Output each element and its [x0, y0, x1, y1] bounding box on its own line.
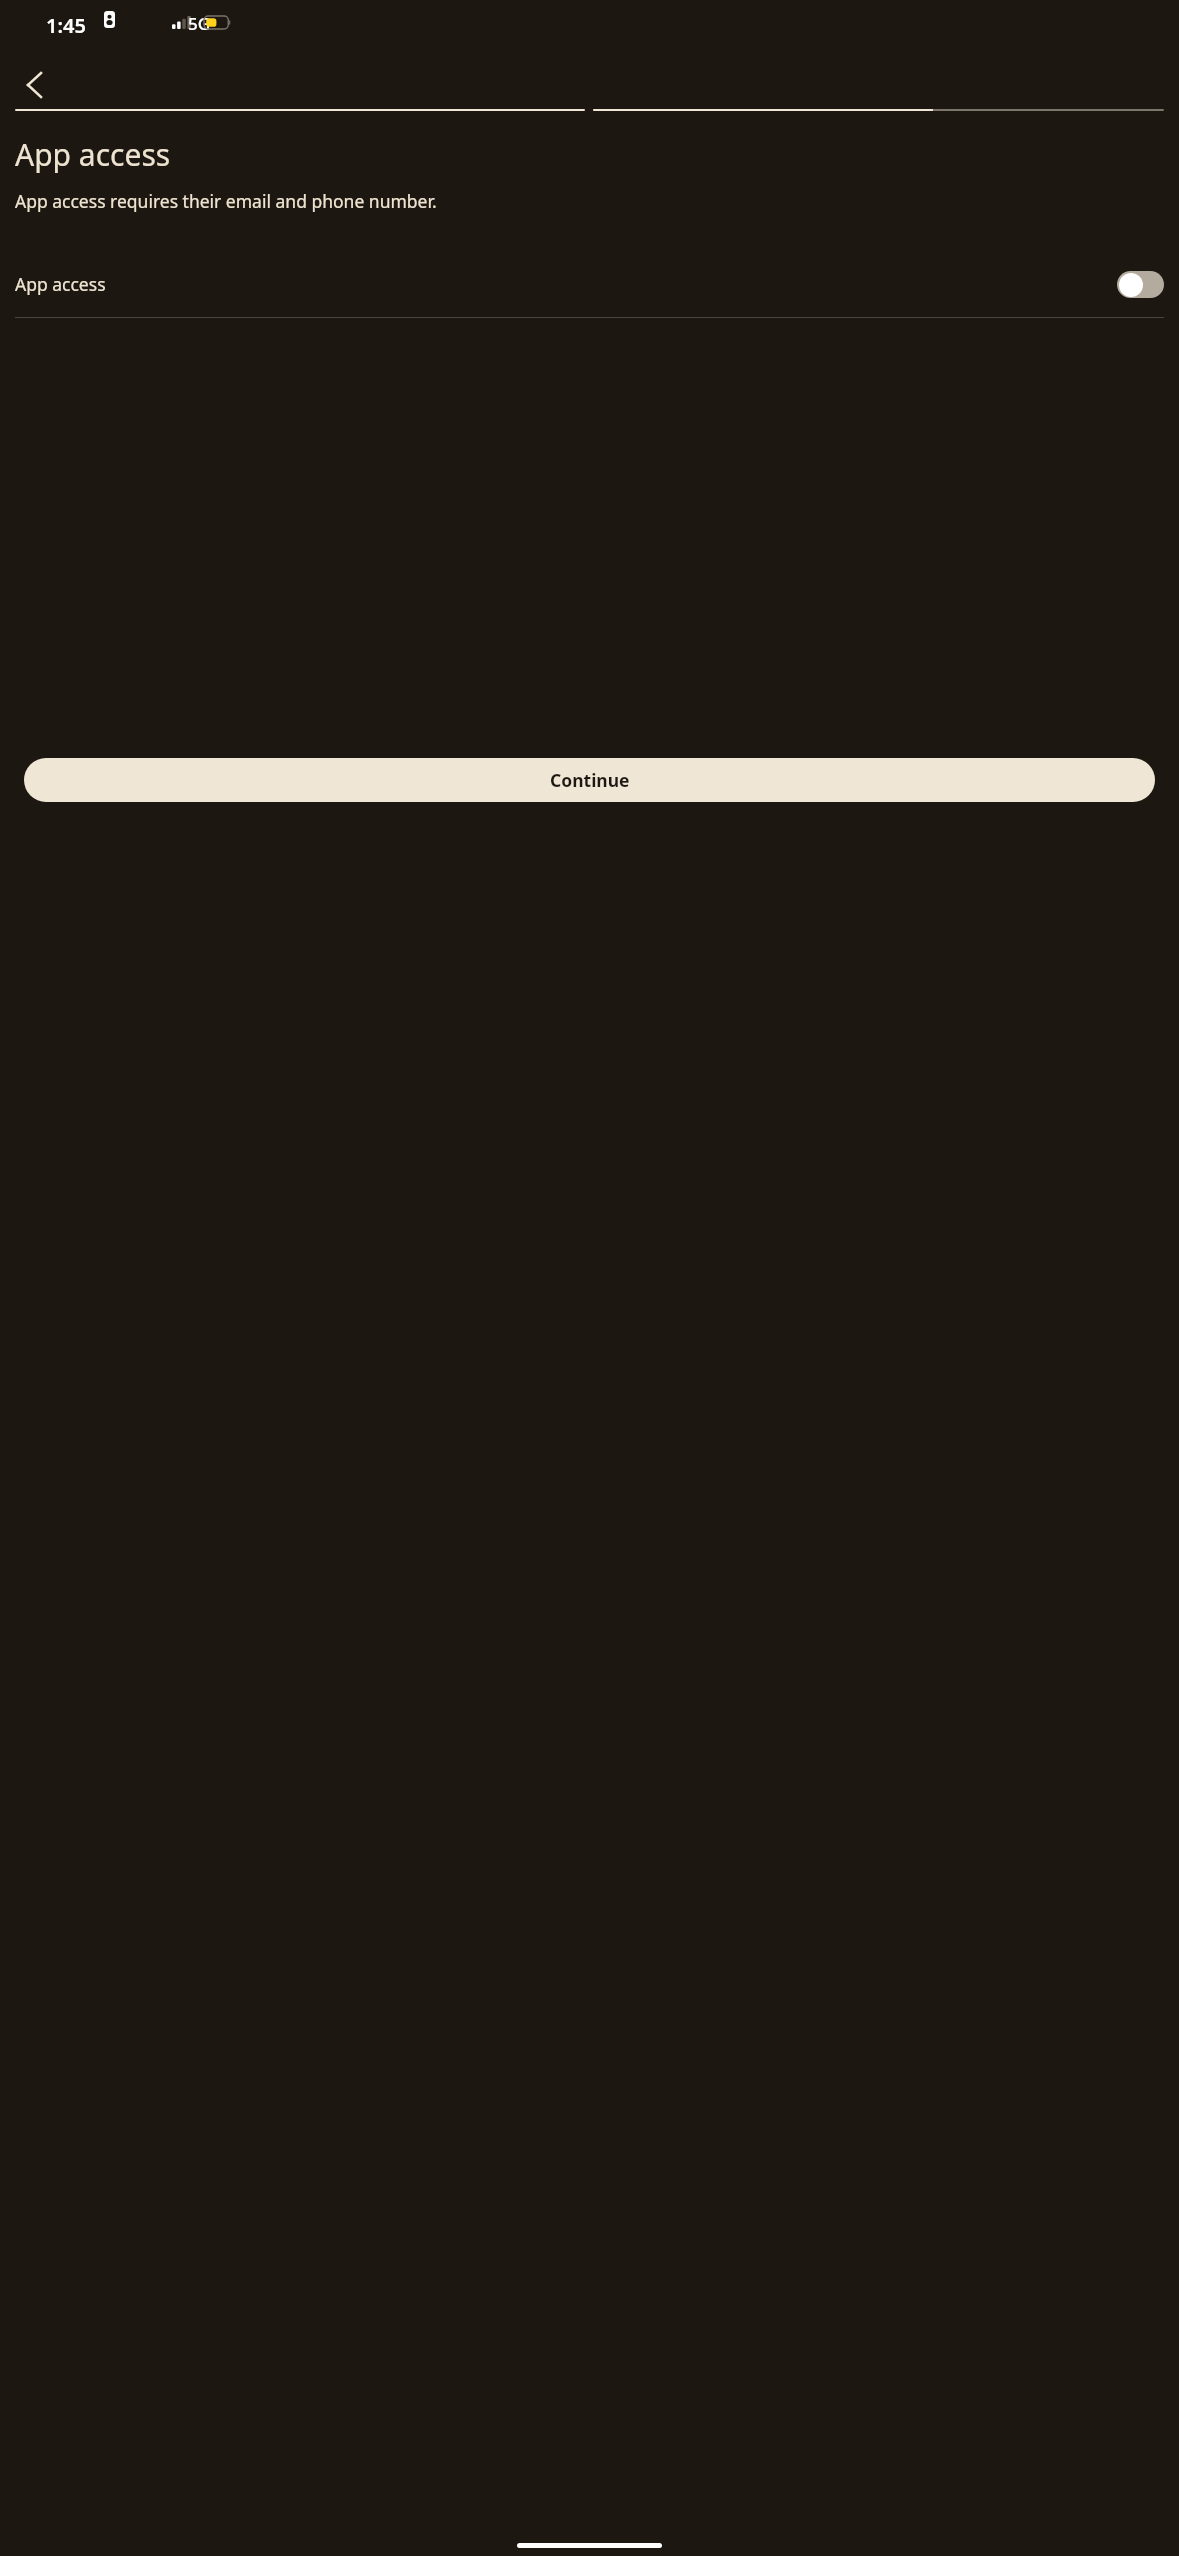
- staticText: Continue: [550, 768, 630, 792]
- staticText: App access: [15, 272, 106, 296]
- button[interactable]: Continue: [24, 758, 1155, 802]
- staticText: App access requires their email and phon…: [15, 189, 437, 213]
- button[interactable]: Back: [7, 57, 62, 112]
- staticText: App access: [15, 134, 171, 175]
- staticText: 5G: [188, 12, 211, 35]
- staticText: 1:45: [46, 12, 86, 39]
- button[interactable]: App access: [15, 258, 1164, 310]
